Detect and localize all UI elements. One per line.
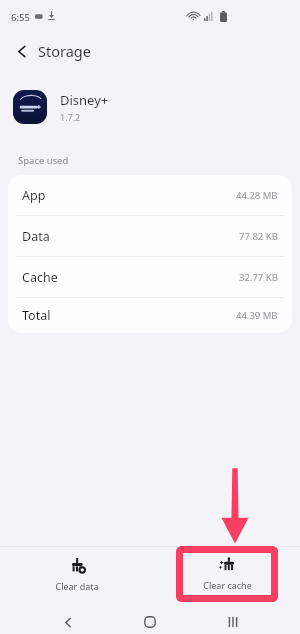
staticText: 44.39 MB [236, 309, 278, 322]
staticText: Cache [22, 269, 58, 286]
staticText: 77.82 KB [239, 230, 278, 243]
button[interactable]: Clear cache [183, 551, 271, 597]
staticText: App [22, 187, 46, 204]
button[interactable]: Cache [8, 257, 292, 297]
staticText: Clear cache [203, 579, 252, 591]
button[interactable]: Data [8, 216, 292, 256]
staticText: Clear data [55, 580, 99, 592]
button[interactable]: Home [136, 608, 164, 634]
button[interactable]: Total [8, 298, 292, 333]
staticText: 6:55 [11, 11, 30, 24]
staticText: Data [22, 228, 50, 245]
staticText: Storage [38, 41, 91, 61]
staticText: Disney+ [60, 91, 109, 109]
button[interactable]: Clear data [32, 551, 122, 599]
button[interactable]: Recent apps [219, 608, 247, 634]
staticText: 32.77 KB [239, 271, 278, 284]
staticText: Total [22, 307, 51, 324]
button[interactable]: App [8, 175, 292, 215]
staticText: 1.7.2 [60, 111, 81, 123]
button[interactable]: Back [54, 608, 82, 634]
staticText: Space used [18, 154, 69, 167]
button[interactable]: Back [8, 37, 36, 65]
staticText: 44.28 MB [236, 189, 278, 202]
